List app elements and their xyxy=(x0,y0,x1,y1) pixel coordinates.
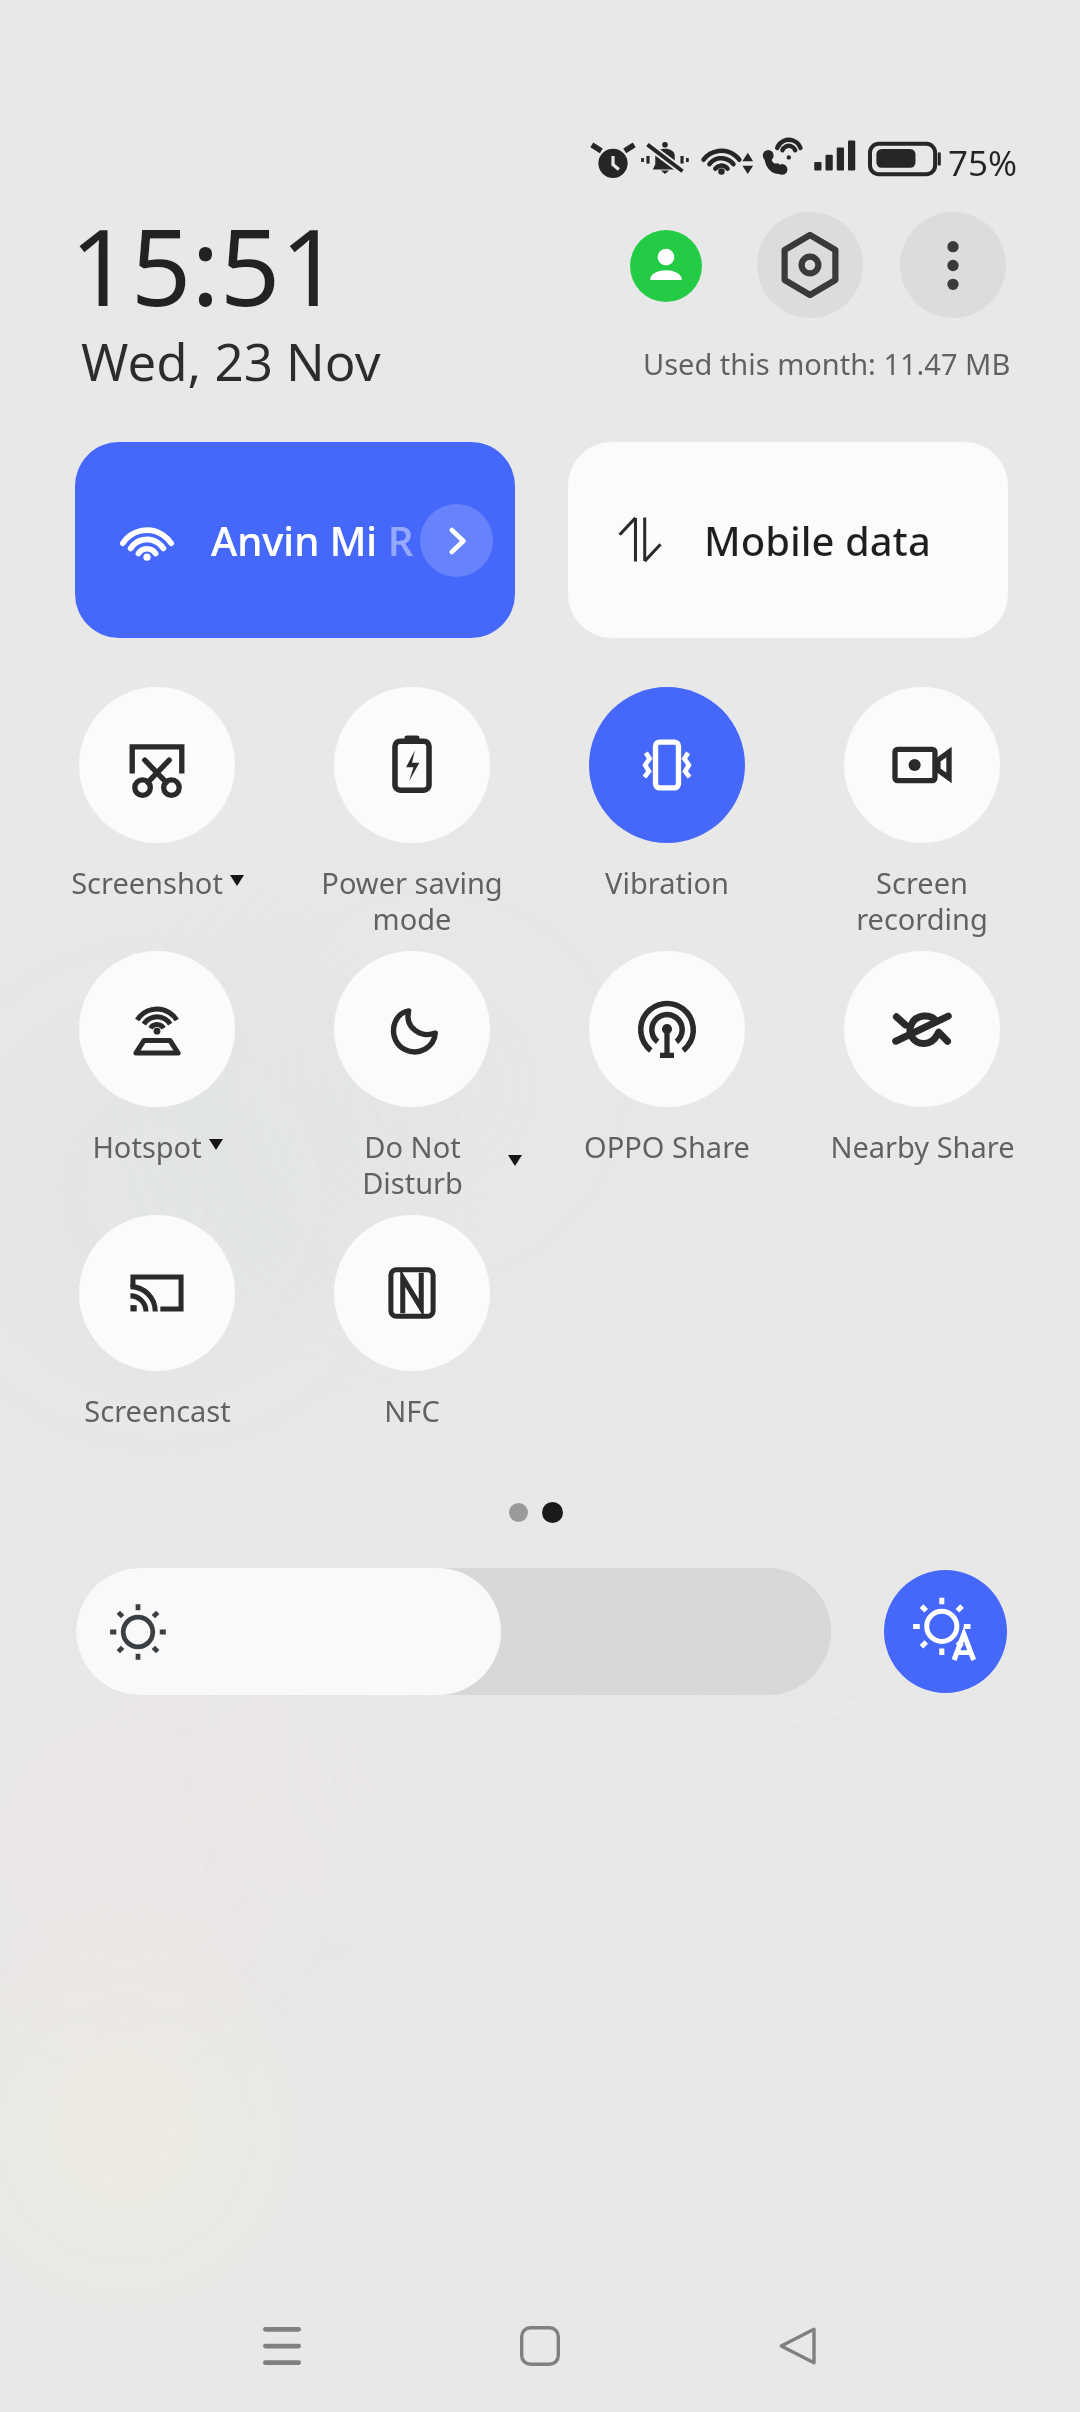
staticText: Used this month: 11.47 MB xyxy=(643,344,1011,383)
button[interactable]: Vibration xyxy=(549,687,785,902)
button[interactable]: Screen recording xyxy=(804,687,1040,939)
staticText: NFC xyxy=(384,1391,440,1430)
staticText: Power saving mode xyxy=(321,863,503,939)
button[interactable]: Home xyxy=(450,2276,630,2412)
button[interactable]: Auto brightness xyxy=(884,1570,1007,1693)
button[interactable]: Account xyxy=(630,230,702,302)
staticText: Screenshot xyxy=(71,863,223,902)
staticText: Hotspot xyxy=(92,1127,202,1166)
button[interactable]: OPPO Share xyxy=(549,951,785,1166)
button[interactable]: Wi-Fi details xyxy=(420,504,493,577)
staticText: Wed, 23 Nov xyxy=(81,326,381,395)
staticText: Vibration xyxy=(605,863,729,902)
button[interactable]: Back xyxy=(708,2276,888,2412)
button[interactable]: Hotspot xyxy=(39,951,275,1166)
staticText: R xyxy=(388,513,414,567)
staticText: Mobile data xyxy=(704,513,931,567)
button[interactable]: Anvin Mi xyxy=(75,442,515,638)
staticText: OPPO Share xyxy=(584,1127,750,1166)
button[interactable]: Power saving mode xyxy=(294,687,530,939)
button[interactable]: Screencast xyxy=(39,1215,275,1430)
button[interactable]: Brightness xyxy=(76,1568,831,1695)
button[interactable]: More options xyxy=(900,212,1006,318)
button[interactable]: Do Not Disturb xyxy=(294,951,530,1203)
button[interactable]: Screenshot xyxy=(39,687,275,902)
staticText: Screen recording xyxy=(856,863,988,939)
button[interactable]: Settings xyxy=(757,212,863,318)
button[interactable]: NFC xyxy=(294,1215,530,1430)
staticText: 75% xyxy=(948,139,1018,187)
staticText: 15:51 xyxy=(70,193,341,337)
staticText: Nearby Share xyxy=(830,1127,1015,1166)
button[interactable]: Mobile data xyxy=(568,442,1008,638)
staticText: Anvin Mi xyxy=(211,513,388,567)
staticText: Do Not Disturb xyxy=(362,1127,463,1203)
staticText: Screencast xyxy=(84,1391,231,1430)
button[interactable]: Recents xyxy=(192,2276,372,2412)
button[interactable]: Nearby Share xyxy=(804,951,1040,1166)
